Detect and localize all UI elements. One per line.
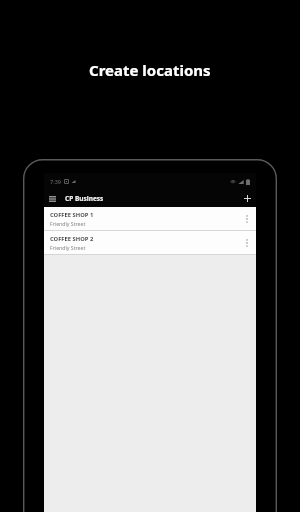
staticText: COFFEE SHOP 1 xyxy=(50,211,94,219)
staticText: Friendly Street xyxy=(50,244,86,251)
button[interactable]: Open navigation menu xyxy=(44,190,61,207)
button[interactable]: Add location xyxy=(239,190,256,207)
staticText: COFFEE SHOP 2 xyxy=(50,235,94,243)
button[interactable]: More options for COFFEE SHOP 2 xyxy=(241,231,253,254)
staticText: Create locations xyxy=(89,60,211,80)
button[interactable]: COFFEE SHOP 2 xyxy=(44,231,256,254)
button[interactable]: COFFEE SHOP 1 xyxy=(44,207,256,230)
staticText: CP Business xyxy=(65,194,104,203)
staticText: 7:39 xyxy=(50,178,61,185)
staticText: Friendly Street xyxy=(50,220,86,227)
button[interactable]: More options for COFFEE SHOP 1 xyxy=(241,207,253,230)
